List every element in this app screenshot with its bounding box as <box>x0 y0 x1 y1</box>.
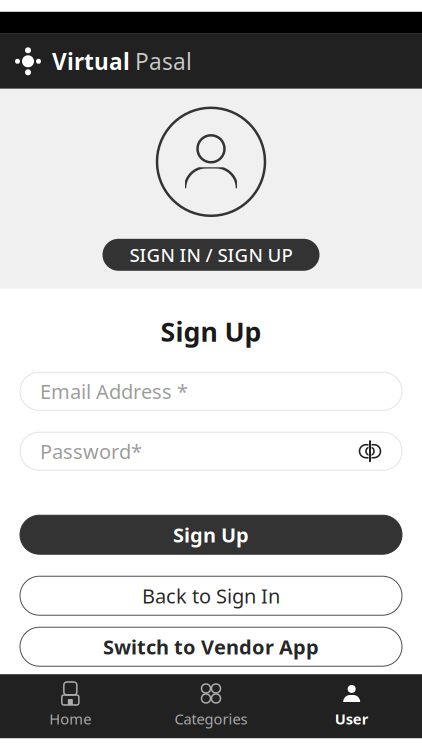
button[interactable]: Switch to Vendor App <box>20 627 402 666</box>
button[interactable]: Back to Sign In <box>20 576 402 615</box>
staticText: Pasal <box>135 46 192 76</box>
button[interactable]: Show password <box>358 440 382 462</box>
staticText: Password* <box>40 438 142 464</box>
staticText: Switch to Vendor App <box>103 633 319 660</box>
staticText: Categories <box>174 709 247 728</box>
staticText: Sign Up <box>173 521 249 548</box>
staticText: Email Address * <box>40 378 188 404</box>
button[interactable]: Categories <box>141 675 281 737</box>
staticText: Home <box>49 709 91 728</box>
button[interactable]: SIGN IN / SIGN UP <box>102 239 319 271</box>
staticText: SIGN IN / SIGN UP <box>129 242 292 267</box>
staticText: Virtual <box>52 46 130 76</box>
button[interactable]: User <box>281 675 422 737</box>
staticText: Back to Sign In <box>142 582 280 609</box>
staticText: User <box>335 709 369 728</box>
staticText: Sign Up <box>160 314 261 349</box>
button[interactable]: Home <box>0 675 141 737</box>
button[interactable]: Sign Up <box>20 515 402 554</box>
